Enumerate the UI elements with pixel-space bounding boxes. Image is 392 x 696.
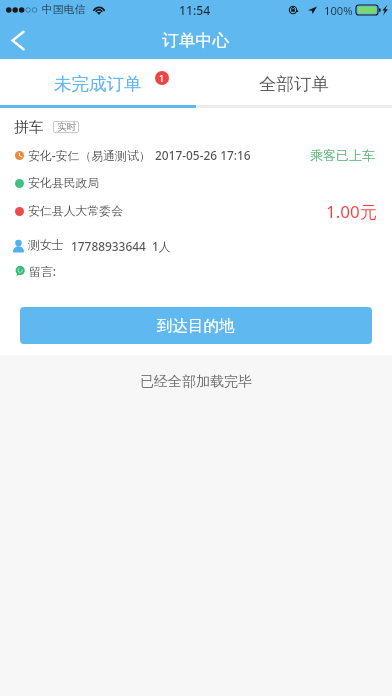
- staticText: 1.00元: [326, 200, 377, 223]
- staticText: 100%: [324, 3, 353, 18]
- button[interactable]: 到达目的地: [20, 307, 372, 344]
- staticText: 实时: [57, 121, 76, 133]
- staticText: 到达目的地: [157, 316, 235, 336]
- staticText: 测女士: [28, 238, 64, 253]
- staticText: 订单中心: [162, 30, 230, 51]
- staticText: 中国电信: [42, 3, 86, 17]
- staticText: 乘客已上车: [310, 147, 375, 163]
- staticText: 留言:: [29, 263, 57, 279]
- button[interactable]: 全部订单: [196, 59, 392, 105]
- staticText: 安化-安仁（易通测试）: [28, 147, 151, 163]
- staticText: 1人: [152, 238, 171, 254]
- staticText: 17788933644: [71, 238, 146, 254]
- staticText: 安化县民政局: [28, 176, 100, 191]
- staticText: 1: [159, 72, 165, 84]
- staticText: 已经全部加载完毕: [140, 373, 252, 391]
- staticText: 11:54: [179, 2, 211, 19]
- staticText: 2017-05-26 17:16: [155, 147, 251, 163]
- staticText: 未完成订单: [54, 73, 142, 95]
- staticText: 全部订单: [259, 73, 329, 95]
- button[interactable]: 未完成订单: [0, 59, 196, 105]
- button[interactable]: Back: [0, 20, 40, 59]
- staticText: 拼车: [14, 118, 44, 137]
- staticText: 安仁县人大常委会: [28, 204, 124, 219]
